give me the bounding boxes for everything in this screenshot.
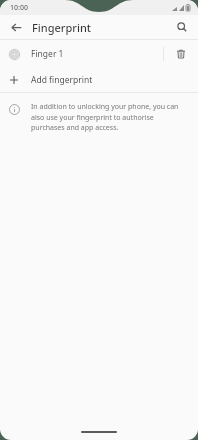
- staticText: Add fingerprint: [31, 74, 93, 86]
- button[interactable]: Finger 1: [0, 40, 198, 68]
- button[interactable]: Search: [172, 17, 192, 37]
- staticText: In addition to unlocking your phone, you…: [31, 102, 186, 132]
- button[interactable]: Delete fingerprint: [164, 40, 198, 68]
- staticText: Fingerprint: [32, 20, 92, 35]
- button[interactable]: Add fingerprint: [0, 68, 198, 92]
- staticText: 10:00: [10, 3, 28, 13]
- staticText: Finger 1: [31, 48, 64, 60]
- button[interactable]: Back: [6, 17, 26, 37]
